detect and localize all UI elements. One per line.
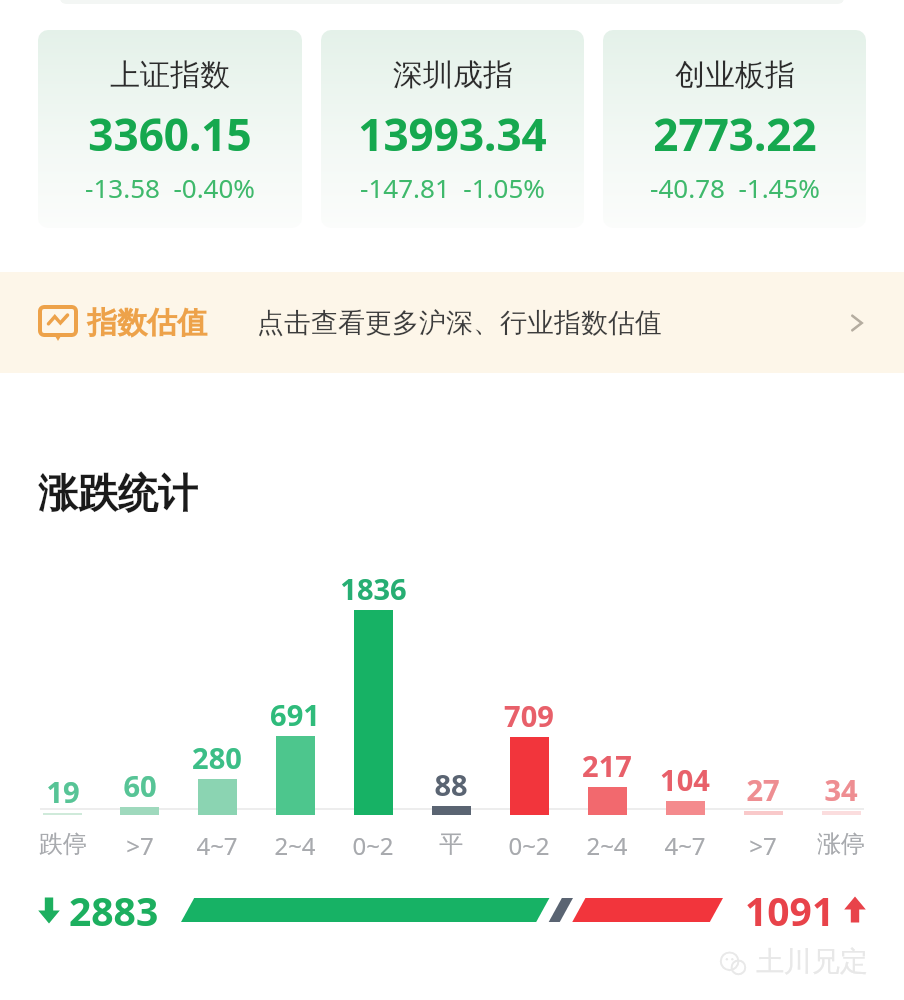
staticText: -147.81 -1.05% bbox=[360, 170, 545, 205]
staticText: 点击查看更多沪深、行业指数估值 bbox=[257, 306, 662, 340]
staticText: 27 bbox=[746, 770, 780, 809]
button[interactable]: 27 bbox=[724, 540, 802, 860]
other: 上涨 bbox=[840, 895, 870, 925]
staticText: 60 bbox=[123, 766, 157, 805]
staticText: 1836 bbox=[340, 569, 407, 608]
button[interactable]: 深圳成指 bbox=[321, 30, 584, 228]
staticText: 2773.22 bbox=[653, 104, 817, 164]
staticText: -40.78 -1.45% bbox=[650, 170, 820, 205]
staticText: 上证指数 bbox=[110, 56, 230, 94]
staticText: 2~4 bbox=[586, 829, 628, 860]
button[interactable]: 34 bbox=[802, 540, 880, 860]
staticText: 280 bbox=[192, 738, 242, 777]
staticText: 指数估值 bbox=[87, 304, 207, 342]
button[interactable]: 217 bbox=[568, 540, 646, 860]
staticText: 19 bbox=[46, 772, 80, 811]
button[interactable]: 指数估值 bbox=[0, 272, 904, 373]
button[interactable]: 1836 bbox=[334, 540, 412, 860]
staticText: 跌停 bbox=[39, 829, 87, 859]
button[interactable]: 上证指数 bbox=[38, 30, 302, 228]
staticText: 13993.34 bbox=[358, 104, 547, 164]
staticText: 涨停 bbox=[817, 829, 865, 859]
staticText: 平 bbox=[439, 829, 463, 859]
button[interactable]: 60 bbox=[101, 540, 178, 860]
staticText: 1091 bbox=[745, 884, 835, 937]
staticText: 2~4 bbox=[274, 829, 316, 860]
button[interactable]: 280 bbox=[178, 540, 256, 860]
staticText: 691 bbox=[270, 695, 320, 734]
staticText: 0~2 bbox=[352, 829, 394, 860]
staticText: >7 bbox=[126, 829, 154, 860]
other: 指数估值 bbox=[38, 303, 78, 343]
staticText: 34 bbox=[824, 770, 858, 809]
staticText: 4~7 bbox=[196, 829, 238, 860]
button[interactable]: 104 bbox=[646, 540, 724, 860]
button[interactable]: 创业板指 bbox=[603, 30, 866, 228]
staticText: 0~2 bbox=[508, 829, 550, 860]
button[interactable]: 709 bbox=[490, 540, 568, 860]
staticText: 217 bbox=[582, 746, 632, 785]
staticText: 88 bbox=[434, 765, 468, 804]
staticText: 3360.15 bbox=[88, 104, 252, 164]
staticText: 涨跌统计 bbox=[38, 468, 198, 518]
button[interactable]: 88 bbox=[412, 540, 490, 860]
staticText: 创业板指 bbox=[675, 56, 795, 94]
staticText: 4~7 bbox=[664, 829, 706, 860]
other: 更多 bbox=[844, 310, 870, 336]
staticText: 2883 bbox=[69, 884, 159, 937]
staticText: 深圳成指 bbox=[393, 56, 513, 94]
staticText: 709 bbox=[504, 696, 554, 735]
staticText: 104 bbox=[660, 760, 710, 799]
staticText: 土川兄定投 bbox=[756, 944, 892, 984]
button[interactable]: 691 bbox=[256, 540, 334, 860]
staticText: -13.58 -0.40% bbox=[85, 170, 255, 205]
other: 下跌 bbox=[34, 895, 64, 925]
button[interactable]: 19 bbox=[24, 540, 101, 860]
staticText: >7 bbox=[749, 829, 777, 860]
